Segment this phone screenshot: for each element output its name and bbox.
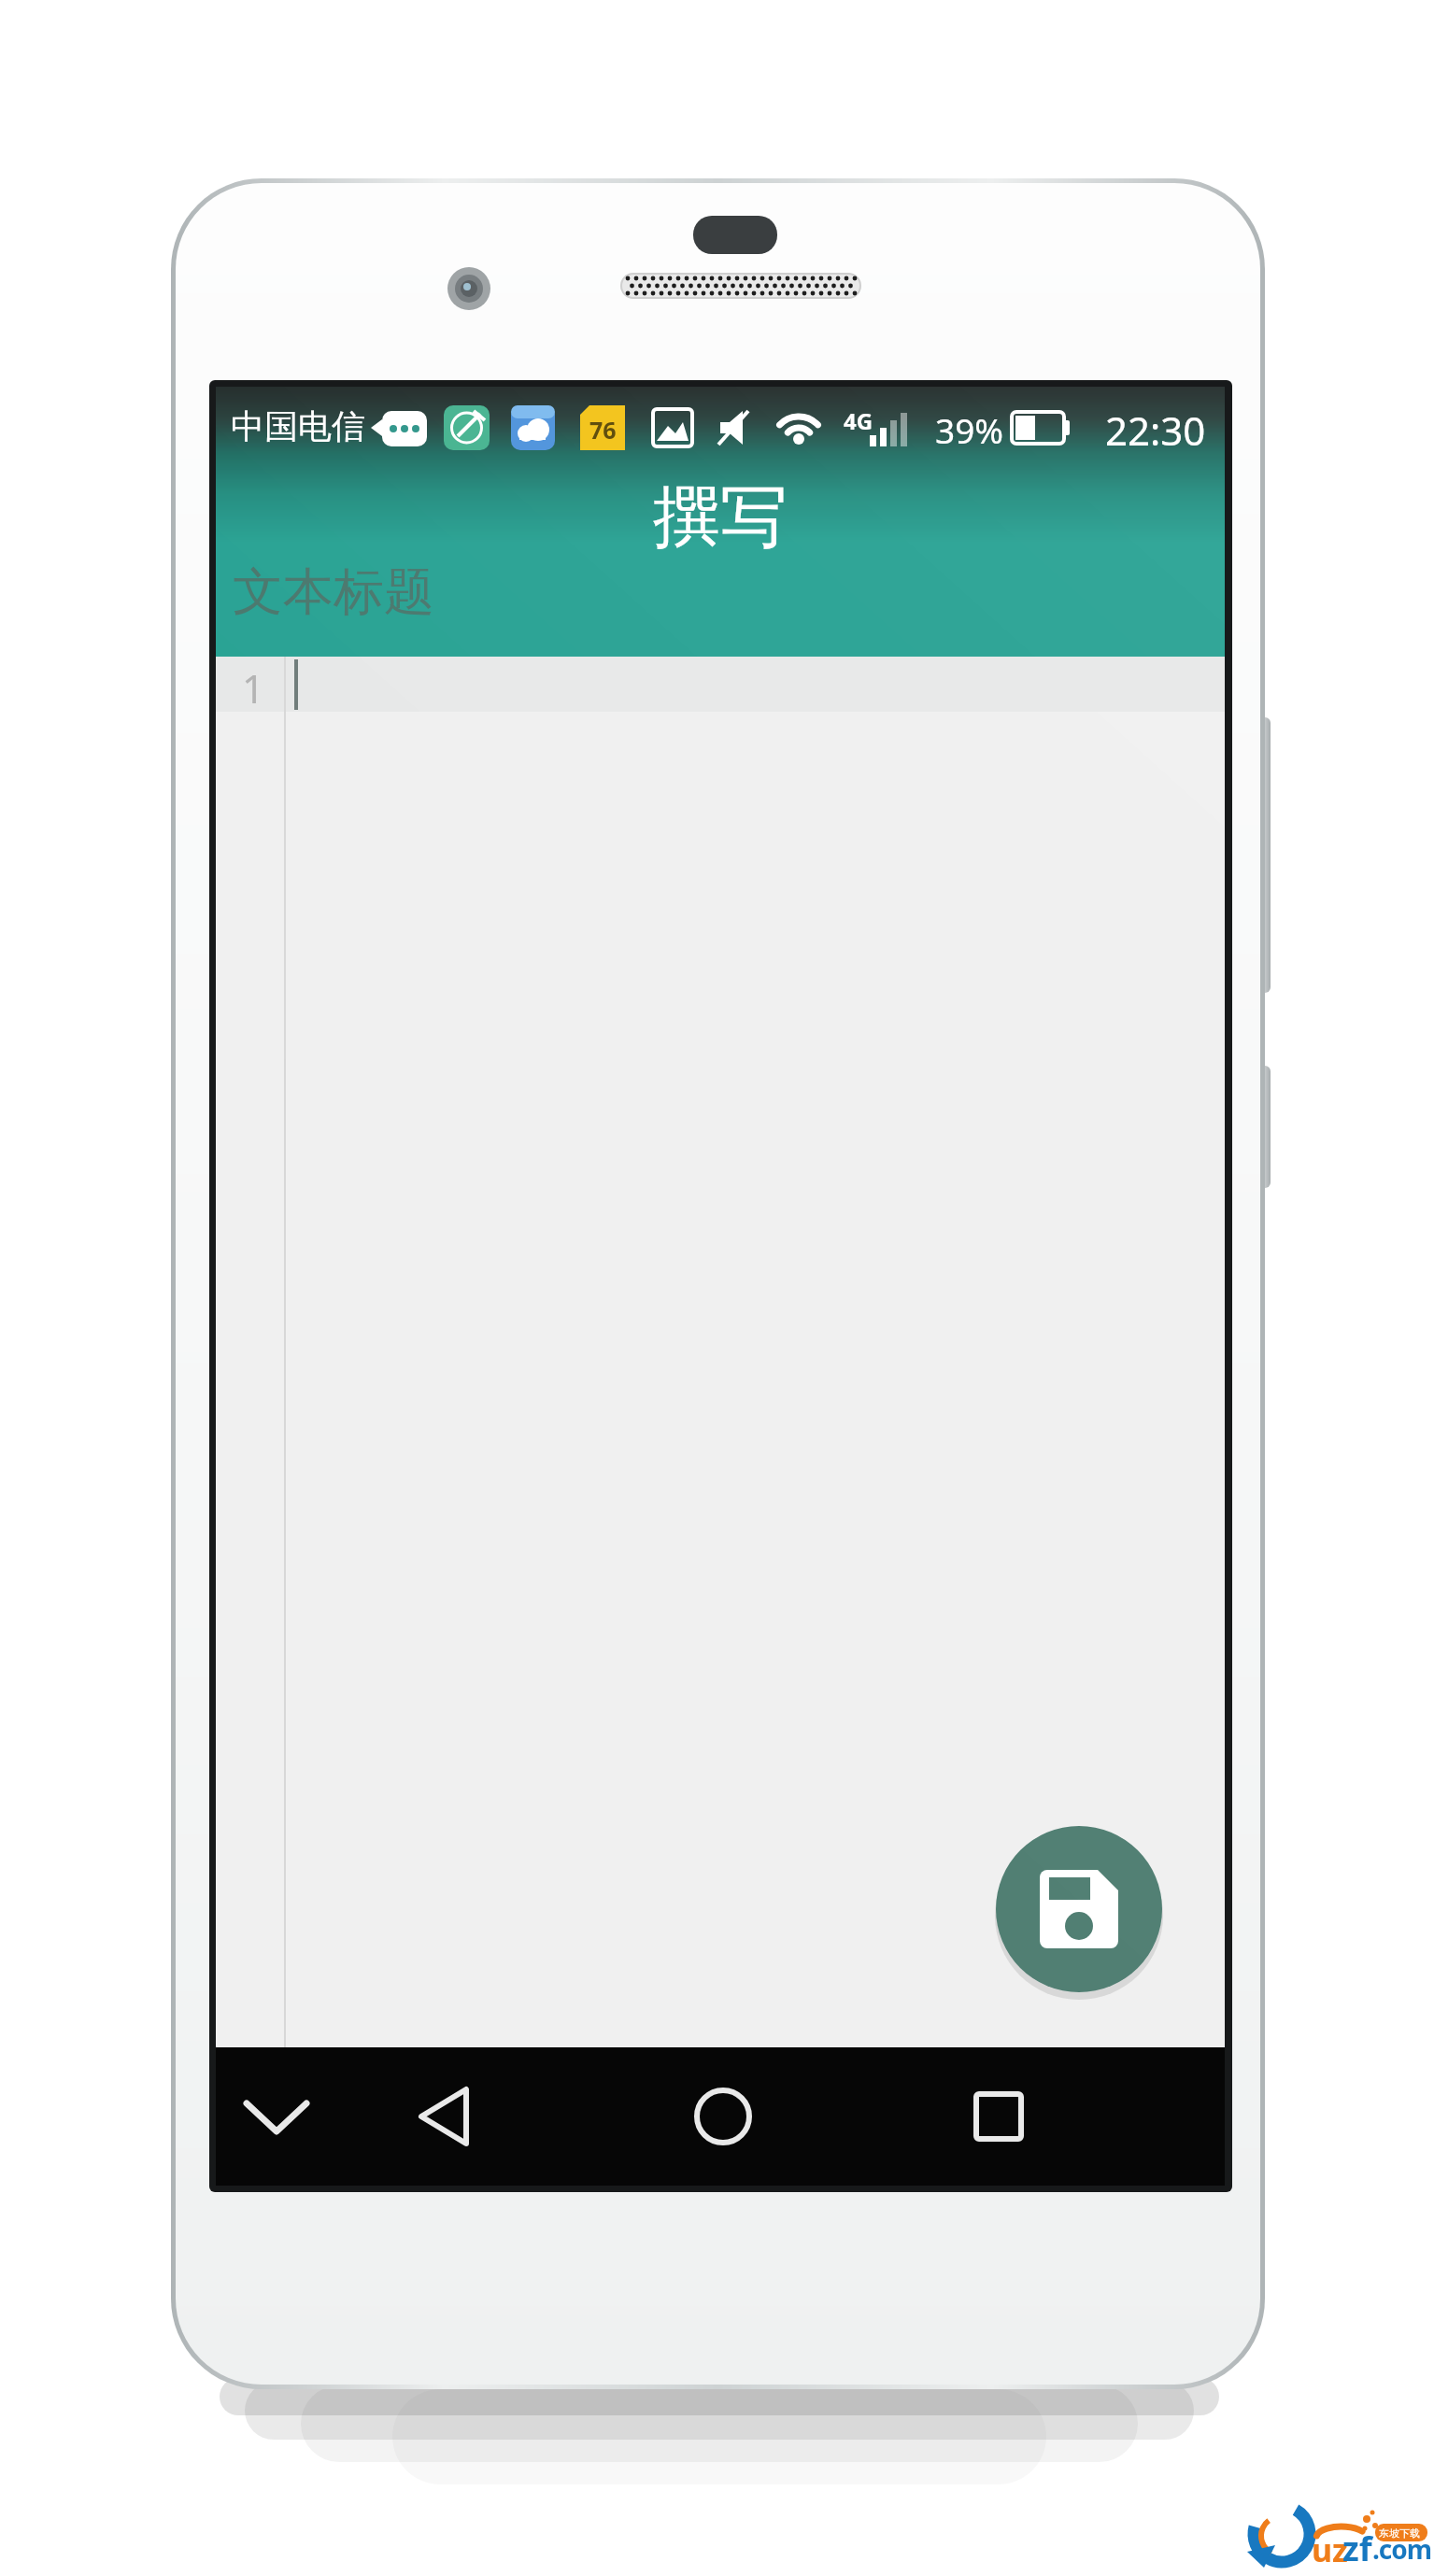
button[interactable] bbox=[674, 2047, 773, 2186]
staticText: 中国电信 bbox=[231, 405, 365, 447]
button[interactable] bbox=[397, 2047, 496, 2186]
staticText: 文本标题 bbox=[233, 560, 434, 624]
staticText: 撰写 bbox=[216, 475, 1225, 564]
staticText: 4G bbox=[844, 405, 873, 436]
staticText: 39% bbox=[935, 406, 1004, 453]
button[interactable]: 1 bbox=[216, 657, 1225, 2047]
button[interactable] bbox=[949, 2047, 1048, 2186]
staticText: .com bbox=[1372, 2531, 1432, 2567]
button[interactable] bbox=[230, 2047, 323, 2186]
staticText: 东坡下载 bbox=[1379, 2526, 1420, 2540]
staticText: 1 bbox=[242, 661, 265, 715]
button[interactable] bbox=[996, 1826, 1162, 1992]
staticText: zf bbox=[1342, 2526, 1372, 2571]
staticText: 22:30 bbox=[1105, 403, 1206, 457]
staticText: uz bbox=[1312, 2528, 1348, 2571]
staticText: 76 bbox=[589, 414, 617, 446]
button[interactable]: 文本标题 bbox=[216, 555, 1225, 657]
